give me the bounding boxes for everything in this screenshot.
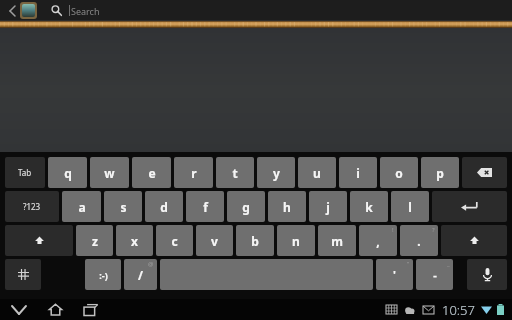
staticText: _ bbox=[447, 260, 450, 268]
button[interactable]: Home bbox=[41, 299, 69, 320]
button[interactable]: Voice input bbox=[467, 259, 507, 290]
staticText: r bbox=[191, 165, 197, 181]
button[interactable]: g bbox=[227, 191, 265, 222]
button[interactable]: Delete bbox=[462, 157, 507, 188]
staticText: " bbox=[407, 260, 410, 268]
button[interactable]: y bbox=[257, 157, 295, 188]
staticText: a bbox=[78, 199, 86, 215]
button[interactable]: h bbox=[268, 191, 306, 222]
staticText: p bbox=[436, 165, 444, 181]
button[interactable]: Shift bbox=[5, 225, 73, 256]
staticText: b bbox=[251, 233, 259, 249]
button[interactable]: ?123 bbox=[5, 191, 59, 222]
button[interactable]: Hide keyboard bbox=[5, 299, 33, 320]
button[interactable]: . bbox=[400, 225, 438, 256]
staticText: . bbox=[417, 233, 421, 249]
staticText: c bbox=[171, 233, 178, 249]
staticText: j bbox=[326, 199, 330, 215]
button[interactable]: Tab bbox=[5, 157, 45, 188]
button[interactable]: u bbox=[298, 157, 336, 188]
staticText: u bbox=[313, 165, 321, 181]
staticText: t bbox=[232, 165, 238, 181]
staticText: h bbox=[283, 199, 291, 215]
staticText: Search bbox=[71, 5, 100, 17]
button[interactable]: Shift bbox=[441, 225, 507, 256]
button[interactable]: , bbox=[359, 225, 397, 256]
button[interactable]: b bbox=[236, 225, 274, 256]
button[interactable]: c bbox=[156, 225, 193, 256]
staticText: e bbox=[148, 165, 156, 181]
button[interactable]: o bbox=[380, 157, 418, 188]
button[interactable]: m bbox=[318, 225, 356, 256]
staticText: s bbox=[120, 199, 127, 215]
button[interactable]: f bbox=[186, 191, 224, 222]
button[interactable]: t bbox=[216, 157, 254, 188]
button[interactable]: - bbox=[416, 259, 453, 290]
staticText: ' bbox=[393, 267, 396, 282]
staticText: l bbox=[408, 199, 412, 215]
button[interactable]: App icon bbox=[22, 4, 35, 17]
staticText: f bbox=[203, 199, 208, 215]
staticText: v bbox=[211, 233, 218, 249]
staticText: :-) bbox=[99, 269, 108, 281]
button[interactable]: Recent apps bbox=[77, 299, 105, 320]
staticText: / bbox=[138, 267, 143, 283]
button[interactable]: r bbox=[174, 157, 213, 188]
button[interactable]: Search bbox=[51, 0, 512, 21]
staticText: m bbox=[331, 233, 343, 249]
button[interactable]: j bbox=[309, 191, 347, 222]
button[interactable]: Switch keyboard bbox=[5, 259, 41, 290]
staticText: , bbox=[376, 233, 380, 249]
staticText: d bbox=[160, 199, 168, 215]
button[interactable]: z bbox=[76, 225, 113, 256]
staticText: y bbox=[273, 165, 280, 181]
staticText: i bbox=[356, 165, 360, 181]
button[interactable]: v bbox=[196, 225, 233, 256]
staticText: o bbox=[395, 165, 403, 181]
button[interactable]: p bbox=[421, 157, 459, 188]
button[interactable]: Enter bbox=[432, 191, 507, 222]
staticText: ?123 bbox=[23, 201, 41, 212]
button[interactable]: i bbox=[339, 157, 377, 188]
button[interactable]: k bbox=[350, 191, 388, 222]
button[interactable]: Back bbox=[5, 0, 19, 21]
button[interactable]: :-) bbox=[85, 259, 121, 290]
staticText: w bbox=[104, 165, 115, 181]
button[interactable]: l bbox=[391, 191, 429, 222]
staticText: @ bbox=[148, 260, 154, 268]
button[interactable]: x bbox=[116, 225, 153, 256]
staticText: z bbox=[92, 233, 98, 249]
staticText: ! bbox=[392, 226, 394, 234]
staticText: - bbox=[433, 267, 437, 282]
staticText: 10:57 bbox=[442, 301, 475, 319]
button[interactable]: a bbox=[62, 191, 101, 222]
staticText: n bbox=[292, 233, 300, 249]
button[interactable]: d bbox=[145, 191, 183, 222]
button[interactable]: e bbox=[132, 157, 171, 188]
button[interactable]: ' bbox=[376, 259, 413, 290]
staticText: q bbox=[64, 165, 72, 181]
button[interactable]: / bbox=[124, 259, 157, 290]
staticText: ? bbox=[432, 226, 435, 234]
staticText: g bbox=[242, 199, 250, 215]
staticText: Tab bbox=[18, 167, 32, 178]
button[interactable]: s bbox=[104, 191, 142, 222]
staticText: x bbox=[131, 233, 138, 249]
button[interactable]: n bbox=[277, 225, 315, 256]
button[interactable]: w bbox=[90, 157, 129, 188]
button[interactable]: q bbox=[48, 157, 87, 188]
staticText: k bbox=[365, 199, 373, 215]
